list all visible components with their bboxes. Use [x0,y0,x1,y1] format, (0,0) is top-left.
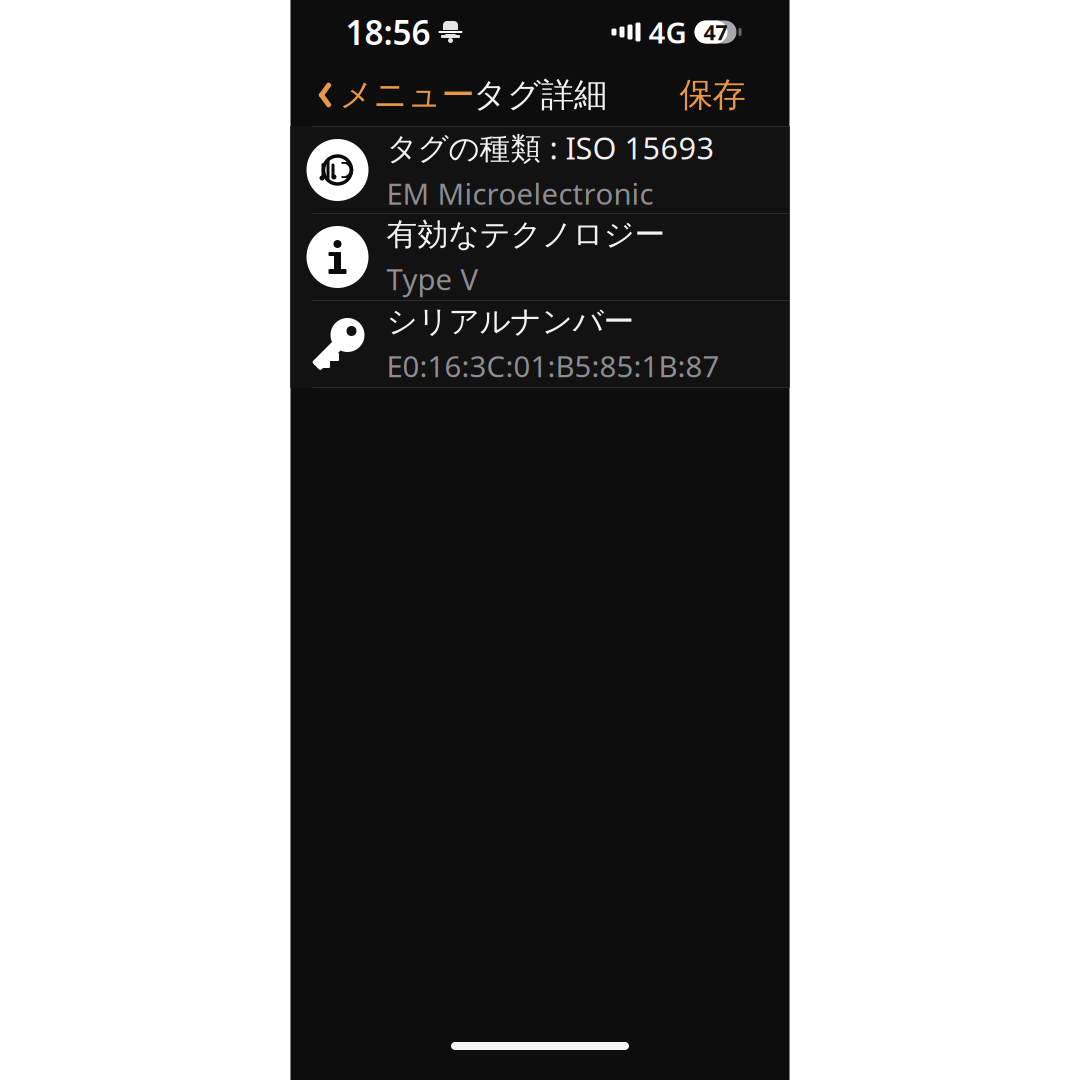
staticText: 4G [648,12,686,51]
staticText: EM Microelectronic [386,174,653,213]
staticText: Type V [386,259,478,298]
staticText: 47 [703,18,727,46]
button[interactable]: 有効なテクノロジー [290,214,789,300]
staticText: タグの種類 : ISO 15693 [386,127,714,168]
staticText: シリアルナンバー [386,303,634,340]
staticText: タグ詳細 [473,74,607,115]
staticText: 有効なテクノロジー [386,216,665,253]
button[interactable]: メニュー [296,64,490,125]
staticText: 保存 [679,74,745,115]
staticText: E0:16:3C:01:B5:85:1B:87 [386,346,719,385]
button[interactable]: シリアルナンバー [290,301,789,387]
button[interactable]: 保存 [661,64,763,125]
staticText: 18:56 [345,10,430,54]
staticText: メニュー [339,74,474,115]
button[interactable]: タグの種類 : ISO 15693 [290,127,789,213]
